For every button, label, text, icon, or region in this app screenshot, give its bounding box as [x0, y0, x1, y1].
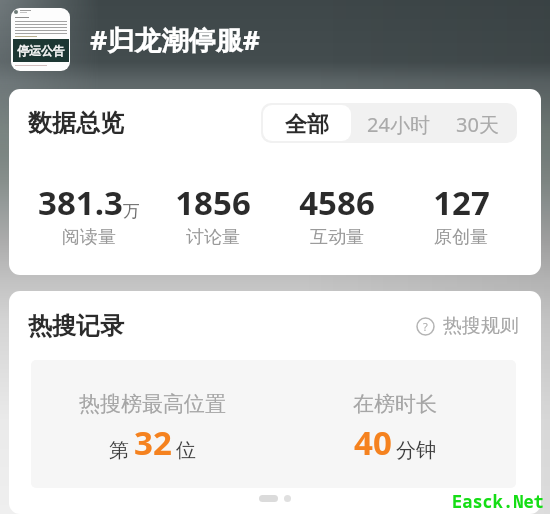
staticText: 1856 — [175, 180, 251, 225]
staticText: 40 — [354, 420, 392, 465]
staticText: 讨论量 — [186, 226, 240, 249]
staticText: Easck.Net — [452, 490, 544, 513]
staticText: 第 — [109, 438, 129, 463]
button[interactable]: 381.3 — [27, 180, 151, 248]
staticText: 127 — [433, 180, 490, 225]
staticText: 热搜榜最高位置 — [79, 391, 226, 417]
staticText: 阅读量 — [62, 226, 116, 249]
staticText: 24小时 — [367, 111, 430, 135]
staticText: 互动量 — [310, 226, 364, 249]
button[interactable]: 4586 — [275, 180, 399, 248]
staticText: 数据总览 — [28, 108, 124, 138]
staticText: 4586 — [299, 180, 375, 225]
button[interactable]: 全部 — [263, 105, 351, 141]
staticText: 32 — [134, 420, 172, 465]
staticText: #归龙潮停服# — [90, 21, 260, 58]
staticText: ? — [423, 319, 428, 334]
button[interactable]: 30天 — [444, 103, 517, 143]
staticText: 在榜时长 — [353, 391, 437, 417]
button[interactable]: 24小时 — [353, 103, 444, 143]
staticText: 万 — [123, 201, 140, 222]
staticText: 原创量 — [434, 226, 488, 249]
button[interactable]: 话题图片 — [11, 8, 70, 71]
button[interactable]: 1856 — [151, 180, 275, 248]
staticText: 30天 — [456, 111, 499, 135]
staticText: 热搜记录 — [28, 311, 124, 341]
staticText: 381.3 — [38, 180, 123, 225]
staticText: 全部 — [285, 111, 329, 135]
staticText: 分钟 — [396, 438, 436, 463]
button[interactable]: 在榜时长 — [273, 360, 516, 488]
button[interactable]: ? — [415, 314, 519, 338]
button[interactable]: 热搜榜最高位置 — [31, 360, 273, 488]
staticText: 位 — [176, 438, 196, 463]
button[interactable]: 127 — [399, 180, 523, 248]
staticText: 停运公告 — [17, 43, 65, 58]
staticText: 热搜规则 — [443, 314, 519, 338]
